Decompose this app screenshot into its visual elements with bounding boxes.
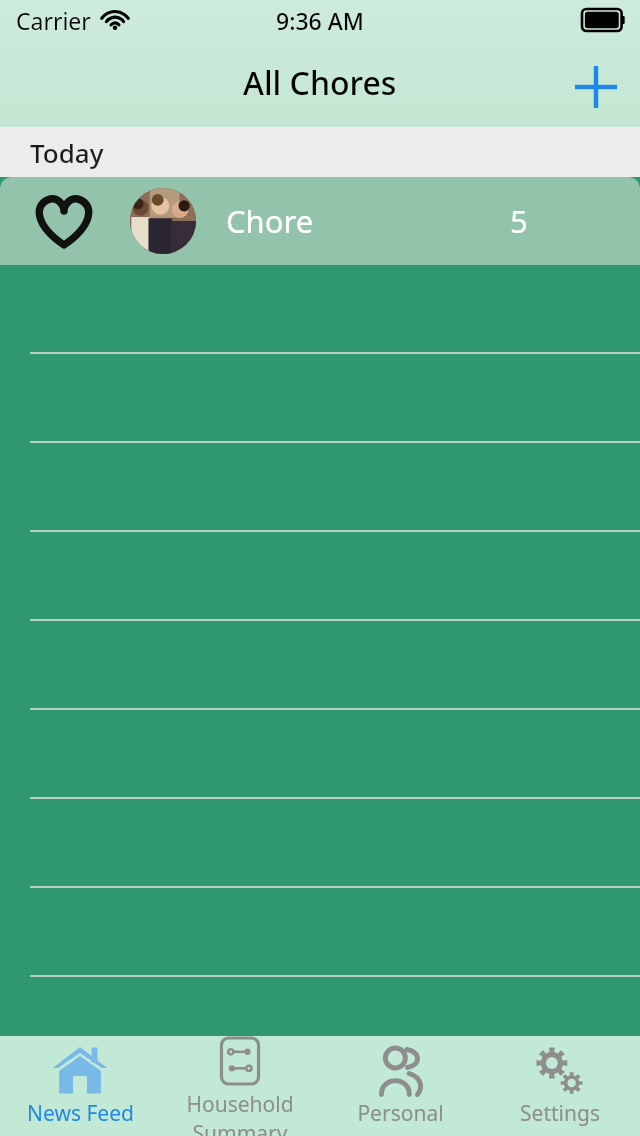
- button[interactable]: Household Summary: [160, 1036, 320, 1136]
- button[interactable]: [0, 710, 640, 799]
- button[interactable]: [0, 621, 640, 710]
- button[interactable]: [0, 443, 640, 532]
- button[interactable]: [0, 532, 640, 621]
- staticText: 9:36 AM: [276, 5, 364, 36]
- staticText: Personal: [357, 1099, 444, 1128]
- button[interactable]: [0, 888, 640, 977]
- button[interactable]: Personal: [320, 1036, 480, 1136]
- button[interactable]: [0, 265, 640, 354]
- button[interactable]: [0, 799, 640, 888]
- staticText: Today: [30, 135, 104, 170]
- staticText: All Chores: [243, 61, 397, 105]
- button[interactable]: [0, 354, 640, 443]
- button[interactable]: Settings: [480, 1036, 640, 1136]
- staticText: Carrier: [16, 5, 91, 36]
- button[interactable]: Add chore: [564, 55, 628, 119]
- button[interactable]: News Feed: [0, 1036, 160, 1136]
- button[interactable]: Chore: [0, 177, 640, 265]
- staticText: Settings: [520, 1099, 600, 1128]
- staticText: Chore: [226, 200, 314, 242]
- staticText: Household Summary: [160, 1090, 320, 1136]
- staticText: 5: [510, 200, 528, 242]
- staticText: News Feed: [27, 1099, 134, 1128]
